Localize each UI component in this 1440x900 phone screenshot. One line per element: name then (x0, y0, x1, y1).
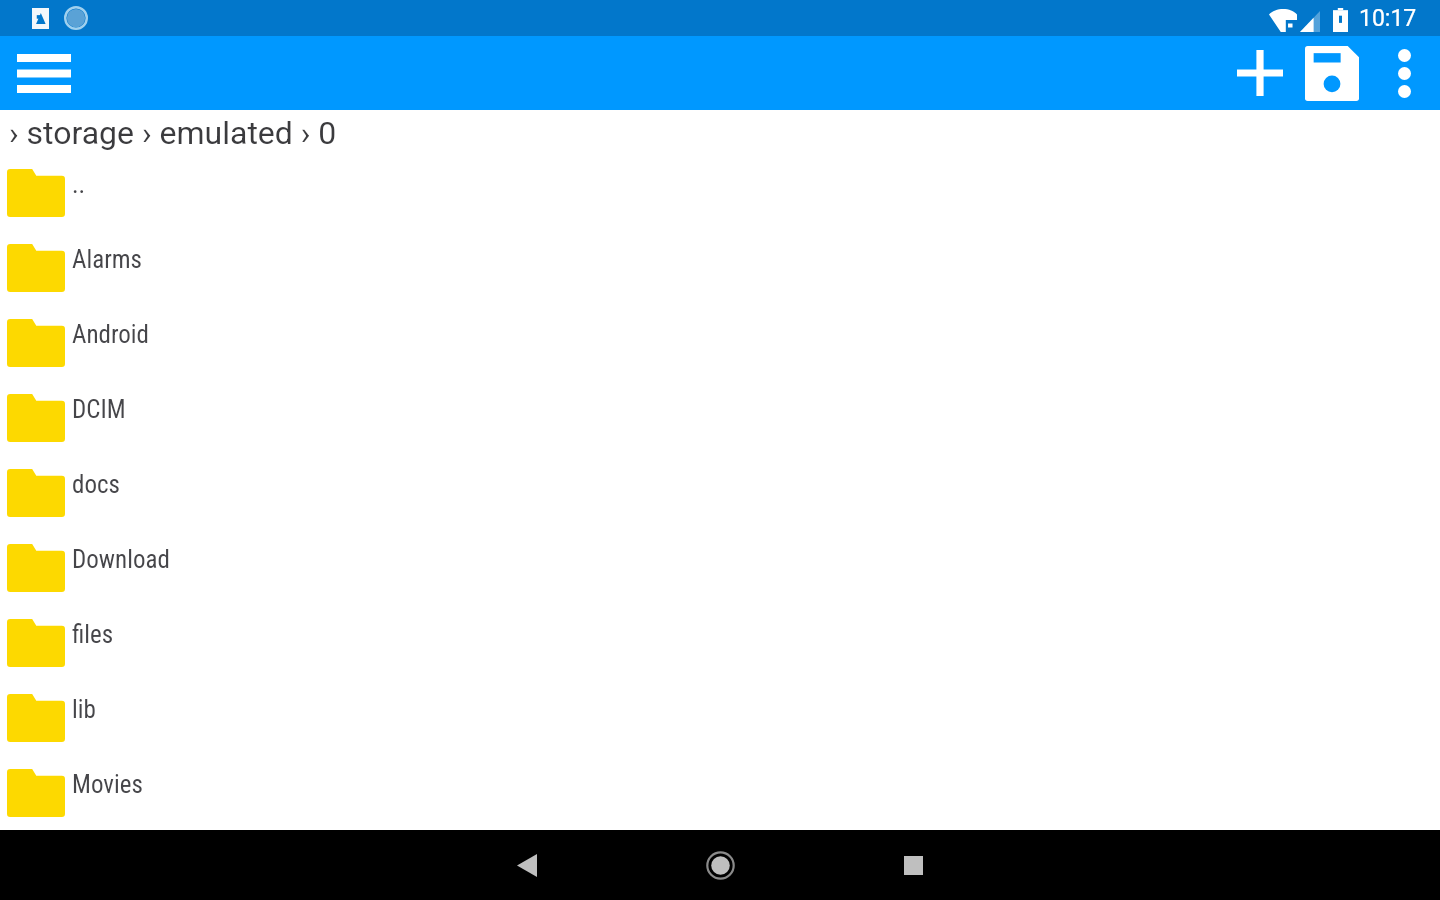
button[interactable]: docs (0, 455, 1440, 530)
button[interactable]: Alarms (0, 230, 1440, 305)
button[interactable]: Download (0, 530, 1440, 605)
staticText: DCIM (72, 395, 126, 424)
button[interactable]: Open navigation drawer (0, 36, 88, 110)
staticText: lib (72, 695, 96, 724)
button[interactable]: lib (0, 680, 1440, 755)
staticText: files (72, 620, 114, 649)
button[interactable]: DCIM (0, 380, 1440, 455)
button[interactable]: files (0, 605, 1440, 680)
button[interactable]: Back (466, 830, 588, 900)
button[interactable]: Save (1296, 37, 1368, 109)
staticText: .. (72, 170, 86, 199)
button[interactable]: More options (1368, 37, 1440, 109)
staticText: docs (72, 470, 120, 499)
button[interactable]: Recent apps (852, 830, 974, 900)
staticText: Android (72, 320, 149, 349)
button[interactable]: Add (1224, 37, 1296, 109)
button[interactable]: Home (659, 830, 781, 900)
button[interactable]: Movies (0, 755, 1440, 830)
button[interactable]: .. (0, 155, 1440, 230)
staticText: Movies (72, 770, 143, 799)
staticText: Download (72, 545, 170, 574)
button[interactable]: Android (0, 305, 1440, 380)
staticText: 10:17 (1359, 5, 1417, 32)
staticText: Alarms (72, 245, 142, 274)
staticText: › storage › emulated › 0 (9, 114, 337, 152)
